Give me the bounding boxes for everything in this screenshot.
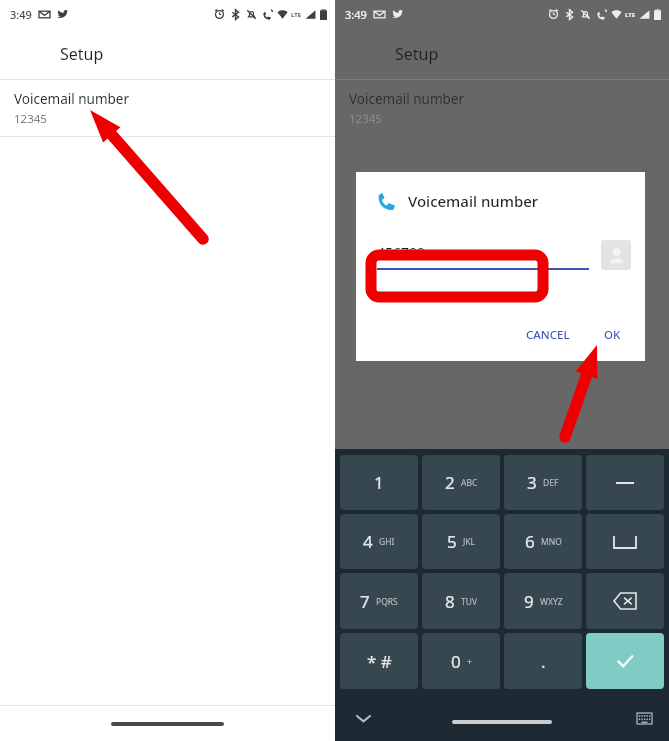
button[interactable]: Voicemail number (335, 80, 669, 136)
staticText: JKL (463, 536, 476, 548)
staticText: PQRS (376, 596, 398, 608)
staticText: + (467, 656, 472, 668)
button[interactable]: 8 (422, 573, 500, 629)
staticText: DEF (543, 477, 559, 489)
button[interactable]: 6 (504, 514, 582, 569)
staticText: Voicemail number (14, 90, 130, 108)
staticText: 3 (527, 471, 537, 494)
staticText: 12345 (349, 111, 382, 127)
button[interactable]: Voicemail number (0, 80, 335, 136)
staticText: 6 (525, 530, 535, 553)
staticText: 1 (374, 471, 384, 494)
staticText: 0 (451, 650, 461, 673)
staticText: * # (367, 650, 392, 673)
staticText: 2 (445, 471, 455, 494)
button[interactable]: Enter (586, 633, 664, 689)
staticText: Voicemail number (408, 191, 539, 211)
button[interactable]: 2 (422, 455, 500, 510)
button[interactable]: Switch keyboard (633, 707, 655, 729)
button[interactable]: 1 (340, 455, 418, 510)
staticText: 3:49 (10, 7, 32, 22)
button[interactable]: Pick contact (601, 240, 631, 270)
staticText: LTE (625, 11, 636, 19)
button[interactable]: Dash (586, 455, 664, 510)
staticText: 7 (360, 590, 370, 613)
staticText: 8 (445, 590, 455, 613)
button[interactable]: * # (340, 633, 418, 689)
staticText: WXYZ (540, 596, 563, 608)
staticText: ABC (461, 477, 478, 489)
staticText: Voicemail number (349, 90, 465, 108)
staticText: CANCEL (526, 327, 570, 343)
staticText: Setup (60, 43, 104, 65)
button[interactable]: 4 (340, 514, 418, 569)
staticText: 9 (524, 590, 534, 613)
staticText: . (541, 650, 546, 673)
button[interactable]: 0 (422, 633, 500, 689)
button[interactable]: 3 (504, 455, 582, 510)
button[interactable]: 9 (504, 573, 582, 629)
button[interactable]: OK (594, 321, 631, 349)
staticText: 3:49 (345, 7, 367, 22)
staticText: 456789 (377, 243, 426, 262)
staticText: 12345 (14, 111, 47, 127)
button[interactable]: . (504, 633, 582, 689)
button[interactable]: 5 (422, 514, 500, 569)
staticText: LTE (291, 11, 302, 19)
button[interactable]: 7 (340, 573, 418, 629)
button[interactable]: CANCEL (516, 321, 580, 349)
button[interactable]: Hide keyboard (351, 706, 375, 730)
staticText: MNO (541, 536, 562, 548)
staticText: GHI (379, 536, 395, 548)
staticText: OK (604, 327, 621, 343)
staticText: 5 (447, 530, 457, 553)
staticText: Setup (395, 43, 439, 65)
staticText: 4 (363, 530, 373, 553)
staticText: TUV (461, 596, 478, 608)
button[interactable]: Delete (586, 573, 664, 629)
button[interactable]: Space (586, 514, 664, 569)
